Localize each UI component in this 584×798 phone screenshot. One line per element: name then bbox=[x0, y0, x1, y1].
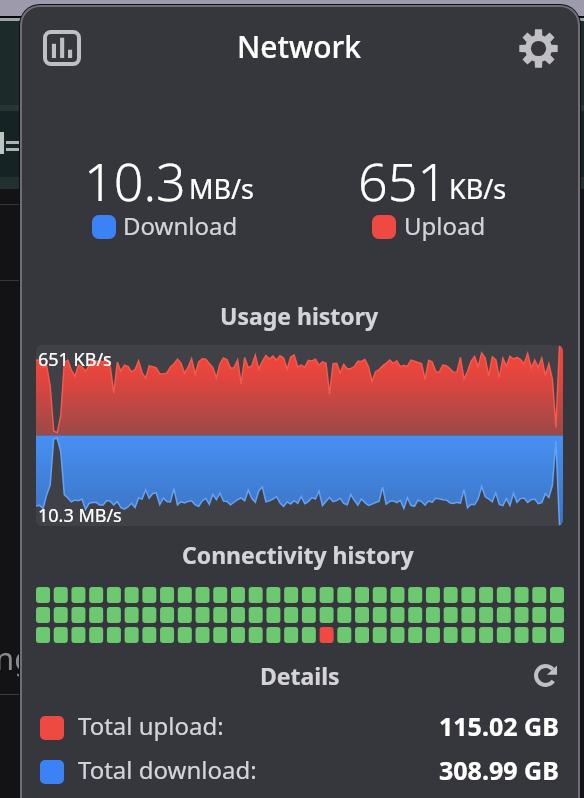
staticText: Total upload: bbox=[78, 709, 224, 742]
staticText: ng bbox=[0, 637, 34, 679]
button[interactable]: Total download: bbox=[22, 750, 578, 792]
staticText: Upload bbox=[404, 209, 486, 242]
staticText: Connectivity history bbox=[182, 539, 414, 570]
staticText: 10.3 MB/s bbox=[38, 503, 122, 526]
staticText: 308.99 GB bbox=[439, 753, 559, 787]
staticText: 651 bbox=[358, 145, 448, 216]
button[interactable]: Refresh bbox=[528, 658, 564, 694]
button[interactable]: Total upload: bbox=[22, 706, 578, 748]
staticText: 651 KB/s bbox=[38, 347, 112, 372]
staticText: 115.02 GB bbox=[439, 709, 559, 743]
staticText: Usage history bbox=[220, 300, 379, 331]
staticText: 10.3 bbox=[84, 145, 186, 216]
staticText: Network bbox=[237, 26, 361, 67]
staticText: MB/s bbox=[189, 170, 255, 207]
staticText: Details bbox=[260, 660, 340, 691]
button[interactable]: Settings bbox=[517, 27, 559, 69]
staticText: Download bbox=[123, 209, 238, 242]
button[interactable]: Statistics bbox=[41, 28, 83, 68]
staticText: KB/s bbox=[449, 170, 507, 207]
staticText: Total download: bbox=[78, 753, 257, 786]
